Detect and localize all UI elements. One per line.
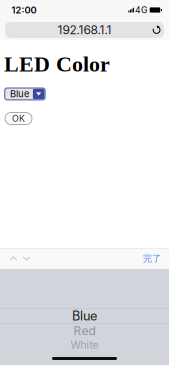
button[interactable]: Next field	[20, 248, 33, 269]
staticText: 192.168.1.1	[57, 23, 111, 37]
button[interactable]: 完了	[143, 248, 169, 269]
staticText: 完了	[143, 253, 161, 264]
staticText: Blue	[10, 88, 29, 100]
button[interactable]: OK	[5, 113, 32, 125]
staticText: 4G	[135, 5, 147, 15]
staticText: Blue	[72, 308, 97, 324]
button[interactable]: 192.168.1.1	[5, 22, 164, 38]
button[interactable]: Blue	[4, 87, 46, 101]
button[interactable]: Previous field	[7, 248, 20, 269]
staticText: White	[70, 339, 98, 351]
staticText: OK	[12, 113, 25, 124]
staticText: LED Color	[4, 52, 110, 76]
staticText: Red	[73, 324, 95, 338]
staticText: 12:00	[11, 4, 36, 16]
